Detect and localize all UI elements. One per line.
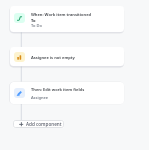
button[interactable]: [10, 82, 124, 104]
button[interactable]: [10, 47, 124, 66]
staticText: To: [31, 18, 36, 23]
staticText: When: Work item transitioned: [31, 12, 92, 17]
staticText: Add component: [26, 121, 62, 127]
button[interactable]: [13, 120, 64, 128]
staticText: Then: Edit work item fields: [31, 87, 85, 92]
staticText: Assignee is not empty: [31, 55, 75, 60]
staticText: To Do: [31, 23, 42, 28]
staticText: Assignee: [31, 95, 49, 100]
button[interactable]: [10, 6, 124, 32]
